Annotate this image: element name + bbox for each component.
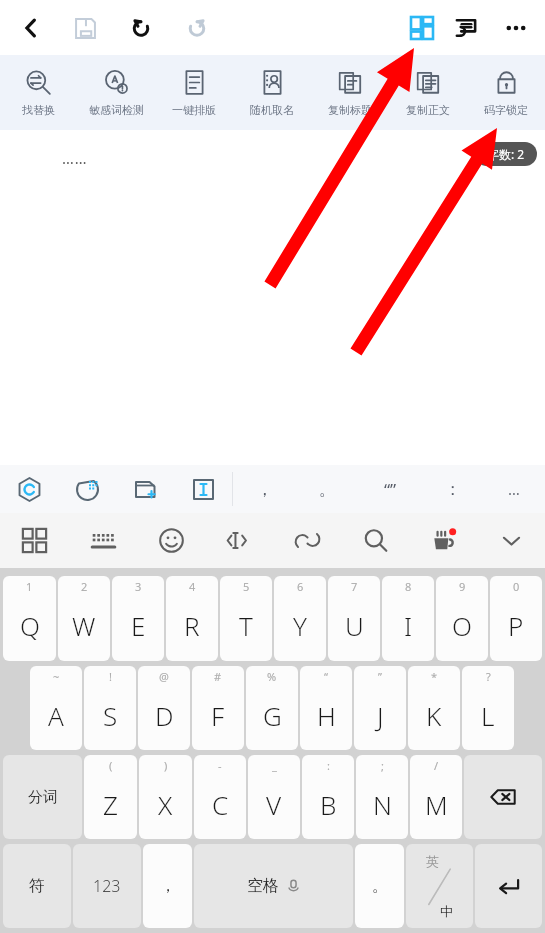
button[interactable]: ; <box>356 755 408 839</box>
button[interactable]: * <box>408 666 460 750</box>
button[interactable]: Redo <box>174 5 220 51</box>
button[interactable]: Undo <box>118 5 164 51</box>
button[interactable]: Grid view <box>399 5 445 51</box>
staticText: 找替换 <box>22 103 55 117</box>
button[interactable]: - <box>194 755 246 839</box>
button[interactable]: 英 <box>406 844 473 928</box>
button[interactable]: 。 <box>355 844 404 928</box>
staticText: ! <box>109 669 112 684</box>
staticText: 码字锁定 <box>484 103 528 117</box>
staticText: K <box>426 698 442 733</box>
staticText: R <box>184 608 200 643</box>
staticText: _ <box>272 758 277 773</box>
button[interactable]: ) <box>139 755 192 839</box>
staticText: 6 <box>297 579 304 594</box>
button[interactable]: Apps <box>0 513 69 568</box>
staticText: M <box>425 787 448 822</box>
button[interactable]: 3 <box>112 576 164 661</box>
button[interactable]: 字数: 2 <box>475 142 537 166</box>
staticText: … <box>508 479 520 499</box>
button[interactable]: Save <box>62 5 108 51</box>
button[interactable]: 码字锁定 <box>467 55 545 130</box>
staticText: # <box>214 669 222 684</box>
button[interactable]: … <box>483 465 545 513</box>
button[interactable]: ? <box>462 666 514 750</box>
button[interactable]: Hide keyboard <box>477 513 545 568</box>
button[interactable]: ” <box>354 666 406 750</box>
button[interactable]: Text tool <box>174 465 232 513</box>
button[interactable]: 0 <box>490 576 542 661</box>
button[interactable]: 符 <box>3 844 71 928</box>
button[interactable]: 随机取名 <box>233 55 311 130</box>
button[interactable]: ， <box>143 844 192 928</box>
staticText: Z <box>103 787 118 822</box>
button[interactable]: 复制正文 <box>389 55 467 130</box>
button[interactable]: ~ <box>30 666 82 750</box>
staticText: ， <box>256 479 273 500</box>
button[interactable]: 复制标题 <box>311 55 389 130</box>
staticText: P <box>508 608 524 643</box>
staticText: Y <box>293 608 307 643</box>
button[interactable]: ( <box>84 755 137 839</box>
staticText: 9 <box>459 579 466 594</box>
staticText: …… <box>62 148 88 168</box>
staticText: 分词 <box>28 788 58 807</box>
button[interactable]: Cursor <box>205 513 273 568</box>
button[interactable]: 找替换 <box>0 55 77 130</box>
staticText: T <box>239 608 253 643</box>
button[interactable]: : <box>302 755 354 839</box>
button[interactable]: @ <box>138 666 190 750</box>
button[interactable]: 。 <box>296 465 359 513</box>
button[interactable]: 4 <box>166 576 218 661</box>
button[interactable]: 123 <box>73 844 141 928</box>
button[interactable]: 5 <box>220 576 272 661</box>
button[interactable]: Backspace <box>464 755 542 839</box>
button[interactable]: ! <box>84 666 136 750</box>
button[interactable]: 9 <box>436 576 488 661</box>
button[interactable]: 6 <box>274 576 326 661</box>
button[interactable]: Enter <box>475 844 542 928</box>
button[interactable]: 分词 <box>3 755 82 839</box>
button[interactable]: % <box>246 666 298 750</box>
button[interactable]: _ <box>248 755 300 839</box>
button[interactable]: “ <box>300 666 352 750</box>
button[interactable]: ： <box>421 465 483 513</box>
staticText: ” <box>378 669 382 684</box>
button[interactable]: Theme <box>409 513 477 568</box>
button[interactable]: Night mode <box>58 465 116 513</box>
staticText: * <box>431 669 438 684</box>
staticText: 英 <box>426 853 439 869</box>
button[interactable]: 2 <box>58 576 110 661</box>
button[interactable]: # <box>192 666 244 750</box>
staticText: ~ <box>53 669 60 684</box>
button[interactable]: 7 <box>328 576 380 661</box>
button[interactable]: 1 <box>3 576 56 661</box>
staticText: “” <box>384 478 397 501</box>
button[interactable]: Emoji <box>137 513 205 568</box>
staticText: 复制标题 <box>328 103 372 117</box>
staticText: ; <box>381 758 384 773</box>
button[interactable]: Clipboard <box>273 513 341 568</box>
staticText: 8 <box>405 579 412 594</box>
staticText: ， <box>160 876 176 896</box>
other: Backspace <box>490 784 516 810</box>
button[interactable]: 一键排版 <box>155 55 233 130</box>
button[interactable]: “” <box>359 465 421 513</box>
button[interactable]: 8 <box>382 576 434 661</box>
button[interactable]: 空格 <box>194 844 353 928</box>
button[interactable]: / <box>410 755 462 839</box>
staticText: - <box>218 758 222 773</box>
staticText: C <box>212 787 229 822</box>
button[interactable]: Keyboard layout <box>69 513 137 568</box>
button[interactable]: Layout <box>443 5 489 51</box>
staticText: @ <box>159 669 169 684</box>
button[interactable]: New note <box>116 465 174 513</box>
button[interactable]: Back <box>8 5 54 51</box>
button[interactable]: 敏感词检测 <box>77 55 155 130</box>
staticText: ? <box>486 669 491 684</box>
button[interactable]: ， <box>233 465 296 513</box>
button[interactable]: Search <box>341 513 409 568</box>
staticText: 空格 <box>247 876 279 896</box>
button[interactable]: More <box>493 5 539 51</box>
button[interactable]: Assistant <box>0 465 58 513</box>
